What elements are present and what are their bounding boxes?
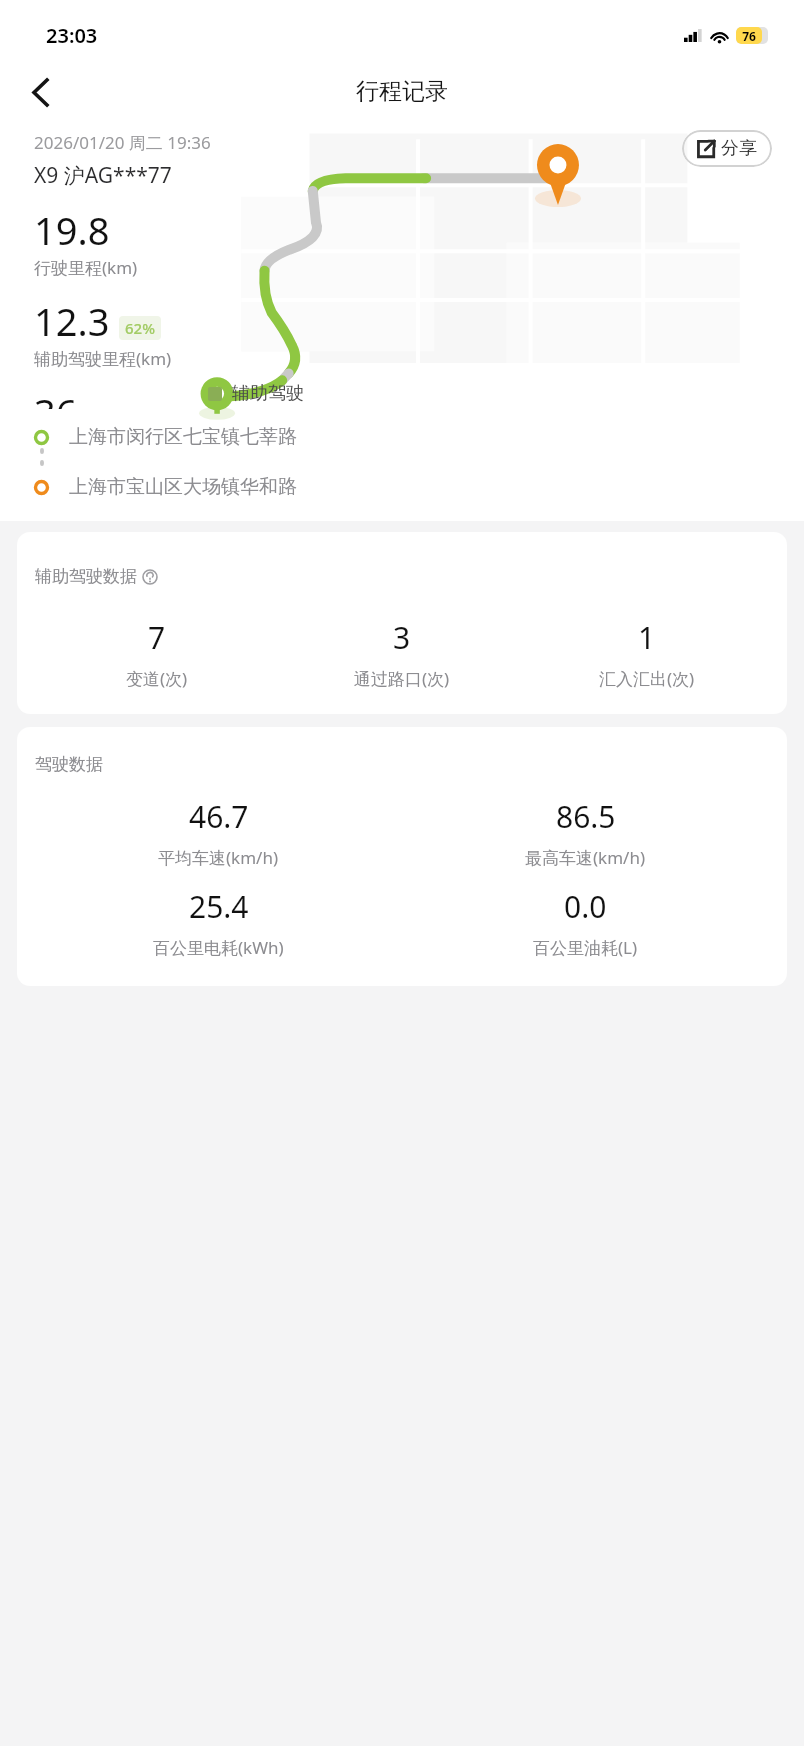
button[interactable]: 分享 bbox=[682, 130, 772, 167]
staticText: 86.5 bbox=[556, 796, 616, 837]
button[interactable]: 辅助驾驶数据 bbox=[17, 532, 787, 714]
staticText: 0.0 bbox=[564, 886, 607, 927]
staticText: X9 沪AG***77 bbox=[34, 161, 172, 190]
staticText: 辅助驾驶 bbox=[232, 382, 304, 405]
staticText: 36 bbox=[34, 386, 78, 409]
button[interactable]: Back bbox=[14, 66, 66, 118]
staticText: 7 bbox=[148, 617, 166, 658]
staticText: 变道(次) bbox=[126, 667, 188, 690]
staticText: 辅助驾驶数据 bbox=[35, 566, 137, 587]
staticText: 驾驶数据 bbox=[35, 754, 103, 775]
staticText: 最高车速(km/h) bbox=[525, 846, 646, 869]
staticText: 3 bbox=[393, 617, 411, 658]
staticText: 上海市宝山区大场镇华和路 bbox=[69, 475, 297, 499]
staticText: 76 bbox=[736, 28, 762, 44]
staticText: 分享 bbox=[721, 137, 757, 160]
staticText: 25.4 bbox=[189, 886, 249, 927]
staticText: 辅助驾驶里程(km) bbox=[34, 347, 172, 370]
staticText: 1 bbox=[638, 617, 656, 658]
staticText: 平均车速(km/h) bbox=[158, 846, 279, 869]
staticText: 2026/01/20 周二 19:36 bbox=[34, 131, 211, 154]
staticText: 通过路口(次) bbox=[354, 667, 450, 690]
staticText: 46.7 bbox=[189, 796, 249, 837]
staticText: 19.8 bbox=[34, 204, 110, 256]
staticText: 23:03 bbox=[46, 22, 98, 49]
staticText: 百公里电耗(kWh) bbox=[153, 936, 284, 959]
staticText: 62% bbox=[125, 318, 155, 338]
staticText: 上海市闵行区七宝镇七莘路 bbox=[69, 425, 297, 449]
button[interactable]: 驾驶数据 bbox=[17, 727, 787, 986]
staticText: 12.3 bbox=[34, 295, 110, 347]
staticText: 行程记录 bbox=[356, 77, 448, 106]
staticText: 百公里油耗(L) bbox=[533, 936, 638, 959]
staticText: 汇入汇出(次) bbox=[599, 667, 695, 690]
staticText: 行驶里程(km) bbox=[34, 256, 138, 279]
